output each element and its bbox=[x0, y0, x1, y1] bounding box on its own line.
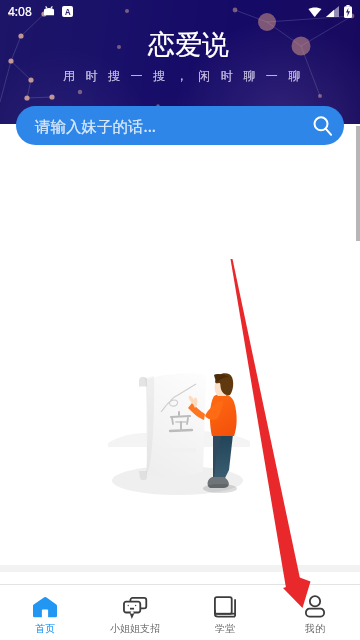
staticText: 恋爱说 bbox=[148, 28, 229, 62]
staticText: 用 时 搜 一 搜 ， 闲 时 聊 一 聊 bbox=[63, 67, 304, 83]
other: Search bbox=[312, 115, 334, 137]
staticText: 小姐姐支招 bbox=[110, 622, 160, 635]
other: Arrow pointer bbox=[0, 0, 360, 640]
staticText: 学堂 bbox=[215, 622, 235, 635]
staticText: A bbox=[65, 6, 71, 17]
button[interactable]: 请输入妹子的话... bbox=[16, 106, 344, 145]
button[interactable]: 学堂 bbox=[180, 585, 270, 640]
button[interactable]: 我的 bbox=[270, 585, 360, 640]
staticText: 请输入妹子的话... bbox=[35, 115, 156, 136]
button[interactable]: 小姐姐支招 bbox=[90, 585, 180, 640]
staticText: 首页 bbox=[35, 622, 55, 635]
staticText: 4:08 bbox=[8, 3, 32, 19]
staticText: 我的 bbox=[305, 622, 325, 635]
button[interactable]: 首页 bbox=[0, 585, 90, 640]
